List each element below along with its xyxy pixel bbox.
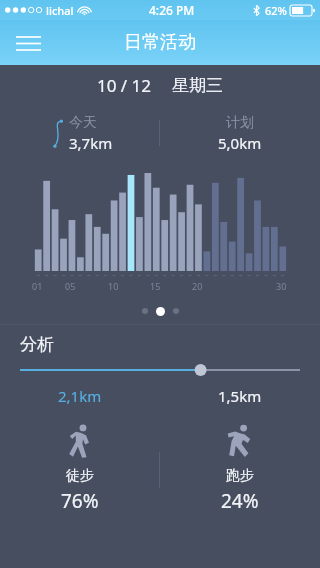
staticText: 30 [276, 280, 287, 292]
staticText: 分析 [20, 334, 54, 355]
staticText: 10 [108, 280, 119, 292]
other: Walking [65, 424, 95, 458]
button[interactable]: Menu [6, 23, 50, 63]
staticText: 10 / 12 [97, 74, 152, 97]
button[interactable] [20, 362, 300, 378]
staticText: 62% [265, 3, 287, 18]
staticText: 徒步 [66, 467, 94, 485]
staticText: 5,0km [218, 133, 262, 153]
staticText: 1,5km [218, 386, 262, 406]
button[interactable]: Running [160, 422, 320, 518]
other: Running [225, 424, 255, 458]
staticText: 星期三 [172, 75, 223, 96]
button[interactable]: 计划 [160, 110, 320, 156]
staticText: 24% [221, 488, 259, 514]
staticText: 跑步 [226, 467, 254, 485]
staticText: 3,7km [69, 133, 113, 153]
staticText: 2,1km [58, 386, 102, 406]
staticText: 4:26 PM [149, 2, 195, 18]
staticText: 日常活动 [124, 31, 196, 54]
staticText: 计划 [226, 114, 254, 132]
staticText: 76% [61, 488, 99, 514]
button[interactable]: 今天 [0, 110, 159, 156]
staticText: lichal [46, 3, 74, 18]
staticText: 20 [192, 280, 203, 292]
staticText: 01 [32, 280, 43, 292]
button[interactable]: 01 [0, 156, 320, 298]
button[interactable]: Walking [0, 422, 159, 518]
staticText: 15 [150, 280, 161, 292]
staticText: 05 [65, 280, 76, 292]
staticText: 今天 [69, 114, 97, 132]
